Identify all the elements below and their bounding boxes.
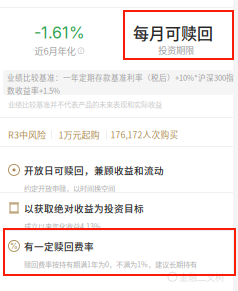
staticText: R3中风险 <box>8 128 46 141</box>
button[interactable]: 以获取绝对收益为投资目标 <box>0 193 233 230</box>
staticText: 开放日可赎回，兼顾收益和流动 <box>24 163 164 177</box>
staticText: 每月可赎回 <box>133 21 213 44</box>
staticText: 业绩比较基准：一年定期存款基准利率（税后）+10%*沪深300指 <box>7 72 234 83</box>
staticText: 约定开放申赎，以时间换空间 <box>24 183 115 193</box>
button[interactable]: 开放日可赎回，兼顾收益和流动 <box>0 155 233 192</box>
staticText: 数收益率+1.5% <box>7 85 60 96</box>
staticText: 赎回费率按持有期满1年为0，不满为1%，建议长期持有 <box>24 259 197 269</box>
staticText: 金融二叉树 <box>179 270 224 283</box>
staticText: 业绩比较基准并不代表产品的未来表现和实际收益 <box>8 99 162 109</box>
staticText: 近6月年化 <box>34 44 75 57</box>
staticText: % <box>10 241 18 251</box>
staticText: -1.61% <box>34 23 85 42</box>
staticText: 投资期限 <box>158 43 194 56</box>
staticText: 成立以来年化收益4.13% <box>24 221 101 231</box>
staticText: 1万元起购 <box>58 128 99 141</box>
staticText: 有一定赎回费率 <box>24 239 94 253</box>
staticText: 176,172人次购买 <box>110 128 178 141</box>
staticText: 以获取绝对收益为投资目标 <box>24 201 144 215</box>
button[interactable]: % <box>0 231 233 268</box>
